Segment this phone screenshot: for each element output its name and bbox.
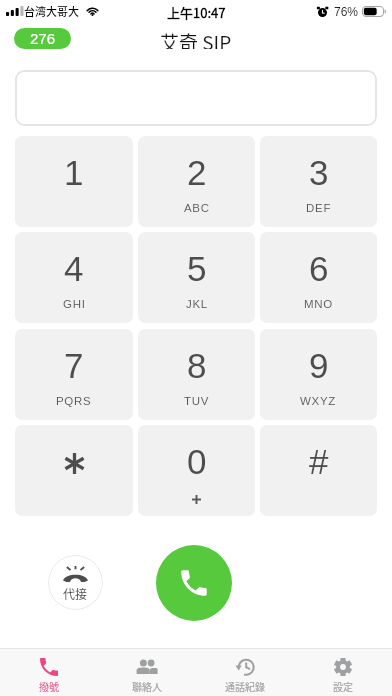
button[interactable]: 1 bbox=[15, 136, 133, 227]
staticText: 8 bbox=[187, 346, 207, 385]
button[interactable]: 4 bbox=[15, 232, 133, 323]
button[interactable]: 代接 bbox=[48, 555, 103, 610]
button[interactable]: # bbox=[260, 425, 377, 516]
staticText: 0 bbox=[187, 442, 207, 481]
staticText: WXYZ bbox=[300, 395, 337, 408]
staticText: 9 bbox=[309, 346, 329, 385]
staticText: DEF bbox=[306, 202, 332, 215]
button[interactable]: 6 bbox=[260, 232, 377, 323]
staticText: 聯絡人 bbox=[132, 679, 162, 693]
staticText: 代接 bbox=[63, 585, 88, 602]
staticText: 2 bbox=[187, 153, 207, 192]
staticText: 設定 bbox=[333, 679, 353, 693]
staticText: 艾奇 SIP bbox=[160, 28, 232, 49]
button[interactable]: 設定 bbox=[294, 649, 392, 696]
staticText: 6 bbox=[309, 249, 329, 288]
button[interactable]: 276 bbox=[14, 28, 71, 49]
staticText: # bbox=[309, 442, 329, 481]
button[interactable]: 通話紀錄 bbox=[196, 649, 294, 696]
button[interactable]: 5 bbox=[138, 232, 255, 323]
button[interactable]: 聯絡人 bbox=[98, 649, 196, 696]
staticText: 76% bbox=[334, 5, 359, 18]
staticText: TUV bbox=[184, 395, 210, 408]
button[interactable] bbox=[15, 70, 377, 126]
staticText: 7 bbox=[64, 346, 84, 385]
button[interactable]: Call bbox=[156, 545, 232, 621]
staticText: 1 bbox=[64, 153, 84, 192]
button[interactable]: 3 bbox=[260, 136, 377, 227]
staticText: 上午10:47 bbox=[167, 3, 226, 22]
button[interactable]: 7 bbox=[15, 329, 133, 420]
staticText: PQRS bbox=[56, 395, 92, 408]
staticText: GHI bbox=[63, 298, 86, 311]
button[interactable]: 撥號 bbox=[0, 649, 98, 696]
button[interactable]: 8 bbox=[138, 329, 255, 420]
staticText: 276 bbox=[30, 30, 56, 47]
button[interactable] bbox=[15, 425, 133, 516]
staticText: 4 bbox=[64, 249, 84, 288]
button[interactable]: 9 bbox=[260, 329, 377, 420]
staticText: 通話紀錄 bbox=[225, 679, 265, 693]
staticText: MNO bbox=[304, 298, 333, 311]
button[interactable]: 0 bbox=[138, 425, 255, 516]
staticText: JKL bbox=[186, 298, 208, 311]
staticText: 3 bbox=[309, 153, 329, 192]
button[interactable]: 2 bbox=[138, 136, 255, 227]
staticText: 5 bbox=[187, 249, 207, 288]
staticText: ABC bbox=[184, 202, 210, 215]
staticText: 撥號 bbox=[39, 679, 59, 693]
staticText: 台湾大哥大 bbox=[24, 3, 79, 19]
